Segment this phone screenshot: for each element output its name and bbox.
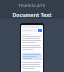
staticText: TRANSLATE bbox=[18, 3, 46, 9]
button[interactable]: Selected passage bbox=[22, 53, 42, 60]
staticText: Document Text bbox=[12, 11, 52, 18]
button[interactable]: Translate bbox=[38, 29, 42, 32]
button[interactable]: Search document bbox=[22, 29, 37, 32]
button[interactable]: Document translation preview bbox=[20, 23, 44, 72]
